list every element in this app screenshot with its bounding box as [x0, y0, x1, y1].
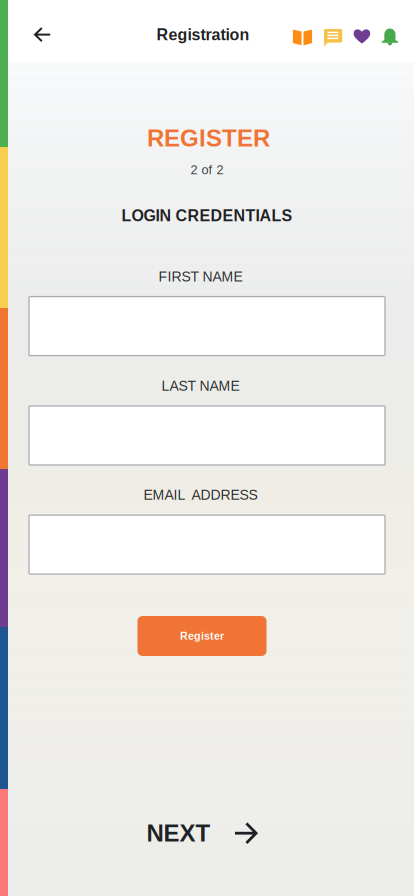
staticText: LAST NAME	[161, 378, 239, 394]
button[interactable]: Library	[286, 21, 318, 55]
button[interactable]: Notifications	[374, 20, 406, 54]
staticText: FIRST NAME	[158, 269, 242, 284]
staticText: 2 of 2	[190, 163, 223, 177]
button[interactable]: Messages	[317, 21, 349, 55]
staticText: Registration	[157, 26, 250, 44]
button[interactable]: Back	[20, 13, 64, 57]
staticText: LOGIN CREDENTIALS	[121, 207, 292, 225]
button[interactable]: Favourites	[346, 20, 378, 54]
button[interactable]: Register	[137, 616, 266, 656]
staticText: REGISTER	[147, 125, 270, 152]
staticText: Register	[180, 630, 224, 642]
staticText: NEXT	[146, 820, 210, 847]
staticText: EMAIL ADDRESS	[143, 487, 257, 503]
button[interactable]: NEXT	[146, 820, 257, 847]
